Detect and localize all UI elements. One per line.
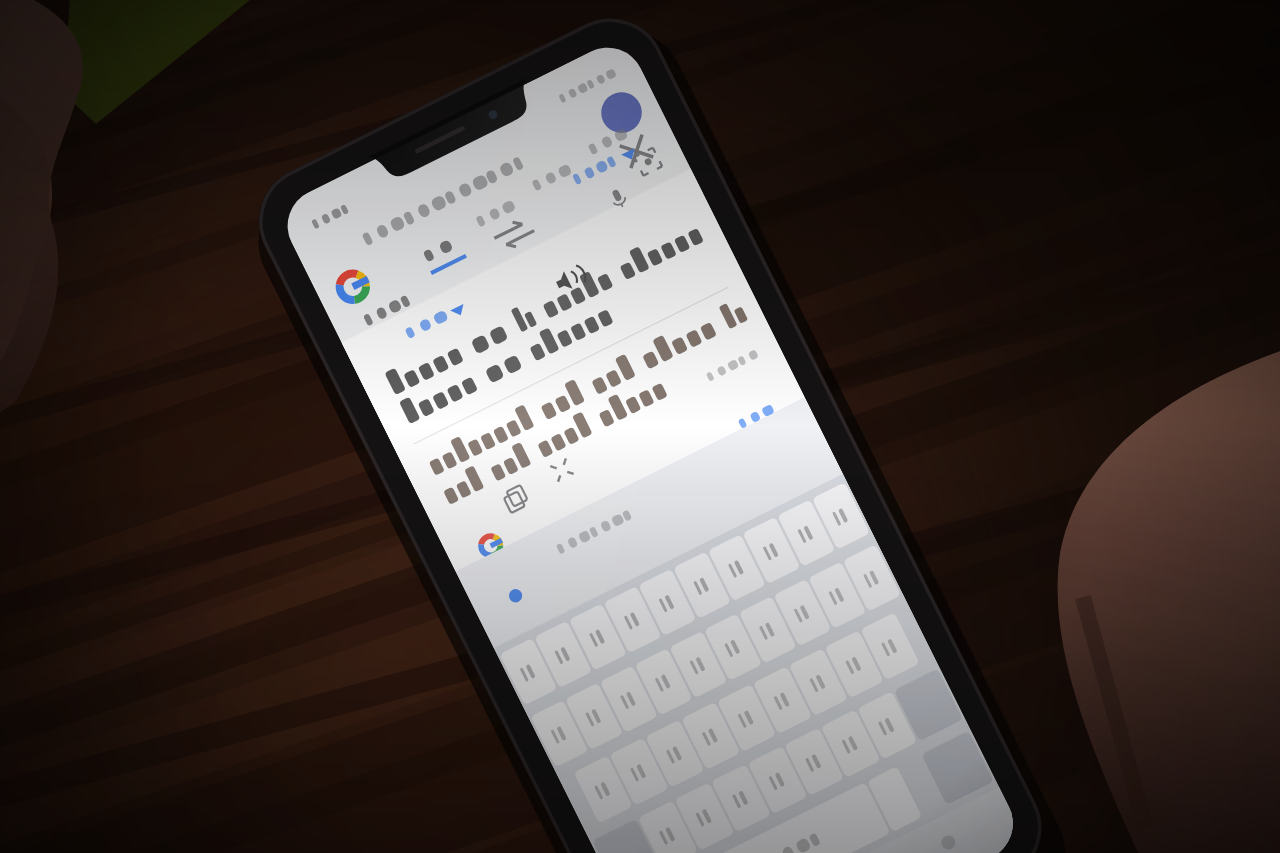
button[interactable]: Phone on table showing Google Translate — [0, 0, 1280, 853]
